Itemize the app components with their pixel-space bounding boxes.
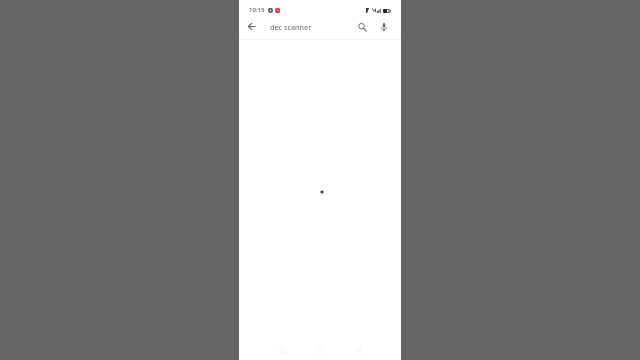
button[interactable]: Search	[354, 19, 370, 35]
button[interactable]: dec scanner	[263, 14, 351, 37]
button[interactable]: Back	[243, 18, 259, 34]
staticText: 10:15	[249, 6, 265, 14]
staticText: dec scanner	[270, 22, 312, 32]
button[interactable]: Voice search	[376, 19, 392, 35]
